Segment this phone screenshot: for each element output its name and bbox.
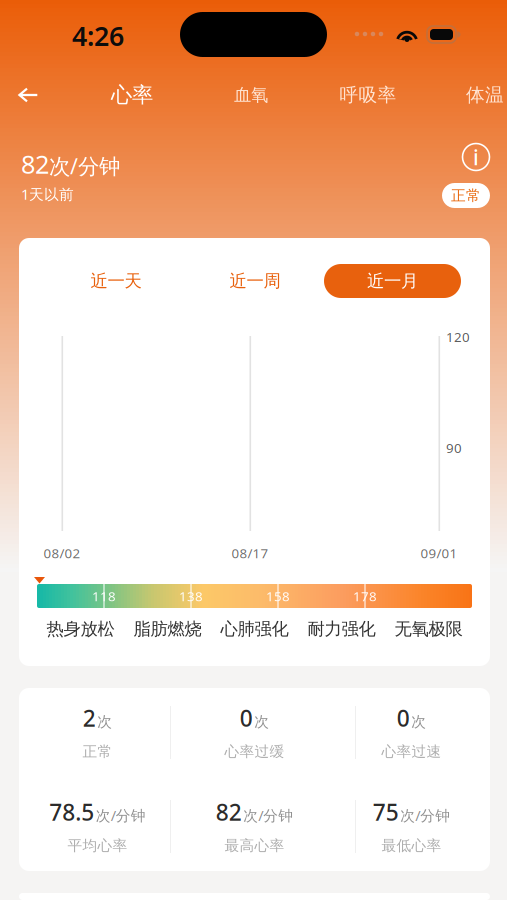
button[interactable]: 正常: [442, 183, 490, 208]
staticText: 次/分钟: [49, 152, 120, 180]
staticText: 4:26: [72, 18, 124, 53]
staticText: 血氧: [234, 84, 268, 106]
staticText: 无氧极限: [394, 618, 462, 640]
staticText: 82: [216, 797, 242, 827]
button[interactable]: 近一周: [205, 264, 305, 298]
staticText: 心率过速: [381, 742, 441, 760]
button[interactable]: Info: [461, 142, 491, 172]
button[interactable]: 血氧: [212, 74, 290, 116]
staticText: 08/02: [43, 544, 80, 562]
staticText: 平均心率: [67, 836, 127, 854]
staticText: 82: [21, 147, 49, 181]
staticText: 09/01: [420, 544, 457, 562]
staticText: i: [473, 143, 479, 171]
staticText: 正常: [451, 186, 481, 204]
staticText: 120: [446, 328, 470, 346]
staticText: 近一月: [367, 270, 418, 292]
button[interactable]: 心率: [82, 73, 182, 117]
staticText: 近一周: [229, 270, 280, 292]
staticText: 08/17: [231, 544, 268, 562]
staticText: 118: [92, 587, 116, 605]
staticText: 0: [397, 703, 410, 733]
staticText: 呼吸率: [339, 83, 396, 106]
button[interactable]: Back: [0, 73, 56, 117]
staticText: 次: [254, 713, 269, 731]
staticText: 2: [83, 703, 96, 733]
staticText: 体温: [466, 83, 504, 106]
staticText: 0: [240, 703, 253, 733]
staticText: 心率: [111, 82, 153, 108]
staticText: 耐力强化: [307, 618, 375, 640]
staticText: 90: [446, 439, 462, 457]
staticText: 脂肪燃烧: [133, 618, 201, 640]
staticText: 138: [179, 587, 203, 605]
staticText: 最低心率: [381, 836, 441, 854]
button[interactable]: 近一天: [66, 264, 166, 298]
button[interactable]: 呼吸率: [319, 74, 417, 116]
staticText: 次/分钟: [400, 806, 450, 825]
button[interactable]: 体温: [466, 74, 507, 116]
staticText: 近一天: [90, 270, 141, 292]
staticText: 158: [266, 587, 290, 605]
staticText: 最高心率: [224, 836, 284, 854]
staticText: 1天以前: [21, 184, 74, 204]
staticText: 正常: [82, 742, 112, 760]
staticText: 心肺强化: [220, 618, 288, 640]
staticText: 热身放松: [46, 618, 114, 640]
staticText: 75: [373, 797, 399, 827]
staticText: 178: [353, 587, 377, 605]
staticText: 次/分钟: [243, 806, 293, 825]
staticText: 次: [97, 713, 112, 731]
button[interactable]: 近一月: [324, 264, 461, 298]
staticText: 次/分钟: [96, 806, 146, 825]
staticText: 心率过缓: [224, 742, 284, 760]
staticText: 78.5: [49, 797, 94, 827]
staticText: 次: [411, 713, 426, 731]
